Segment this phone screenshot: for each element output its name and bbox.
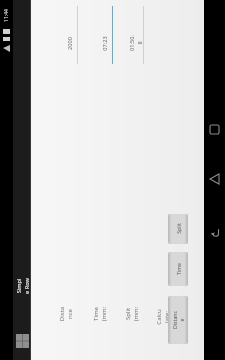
staticText: Time (mm:ss)	[92, 306, 108, 322]
button[interactable]: Home	[204, 158, 225, 200]
button[interactable]: Back	[204, 212, 225, 254]
staticText: 11:44	[3, 9, 10, 22]
staticText: Calculate:	[155, 309, 171, 325]
staticText: Time	[175, 263, 182, 275]
button[interactable]: Recent apps	[204, 108, 225, 150]
staticText: 2000	[66, 37, 74, 50]
staticText: 07:23	[101, 36, 109, 51]
other: App icon	[16, 334, 29, 348]
staticText: Simple Rowing Calculator	[15, 278, 31, 294]
staticText: Split	[175, 223, 182, 234]
button[interactable]: Distance	[168, 296, 188, 344]
button[interactable]: Time	[168, 252, 188, 286]
staticText: 01:50.8	[128, 35, 144, 51]
staticText: Split (mm:ss)	[124, 306, 140, 322]
button[interactable]: Split	[168, 214, 188, 244]
staticText: Distance	[171, 310, 185, 330]
staticText: Distance (m)	[58, 306, 74, 322]
